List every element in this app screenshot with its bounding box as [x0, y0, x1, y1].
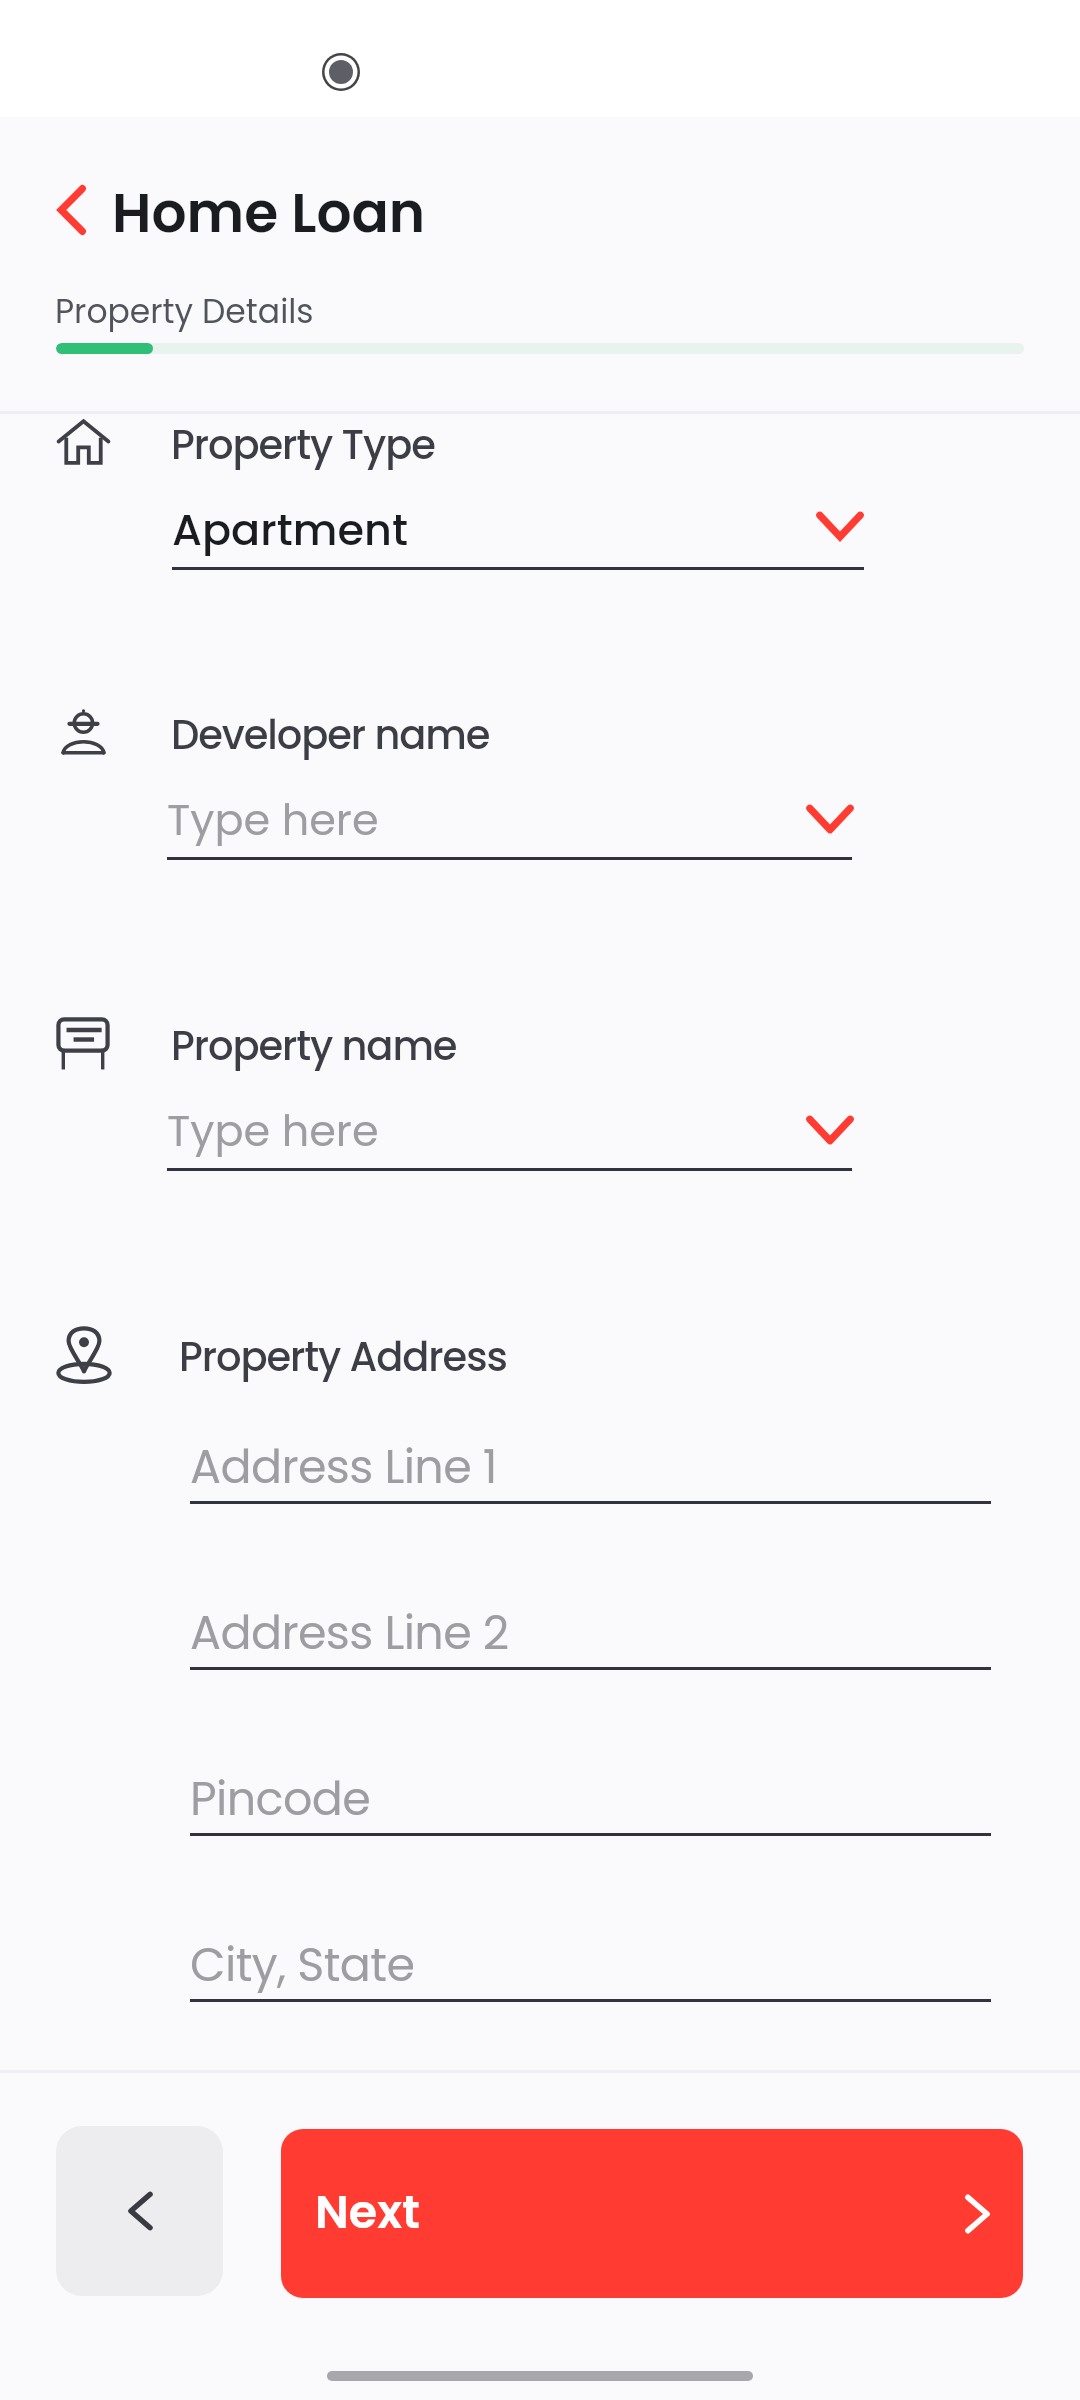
- button[interactable]: [167, 776, 852, 863]
- staticText: Property Details: [55, 288, 314, 334]
- staticText: Property name: [171, 1018, 457, 1074]
- staticText: Address Line 1: [190, 1435, 497, 1499]
- staticText: City, State: [190, 1933, 415, 1997]
- button[interactable]: [172, 486, 864, 573]
- staticText: Type here: [167, 790, 379, 850]
- staticText: Developer name: [171, 707, 490, 763]
- staticText: Address Line 2: [190, 1601, 509, 1665]
- staticText: Home Loan: [112, 174, 426, 246]
- button[interactable]: [190, 1421, 991, 1505]
- staticText: Pincode: [190, 1767, 371, 1831]
- staticText: Type here: [167, 1101, 379, 1161]
- button[interactable]: [190, 1753, 991, 1837]
- staticText: Next: [315, 2180, 420, 2244]
- button[interactable]: [190, 1587, 991, 1671]
- staticText: Property Type: [171, 417, 435, 473]
- button[interactable]: [167, 1087, 852, 1174]
- button[interactable]: Next: [281, 2129, 1023, 2298]
- staticText: Property Address: [179, 1329, 507, 1385]
- button[interactable]: Previous step: [56, 2126, 223, 2296]
- staticText: Apartment: [172, 500, 408, 560]
- button[interactable]: Back: [48, 174, 426, 246]
- button[interactable]: [190, 1919, 991, 2003]
